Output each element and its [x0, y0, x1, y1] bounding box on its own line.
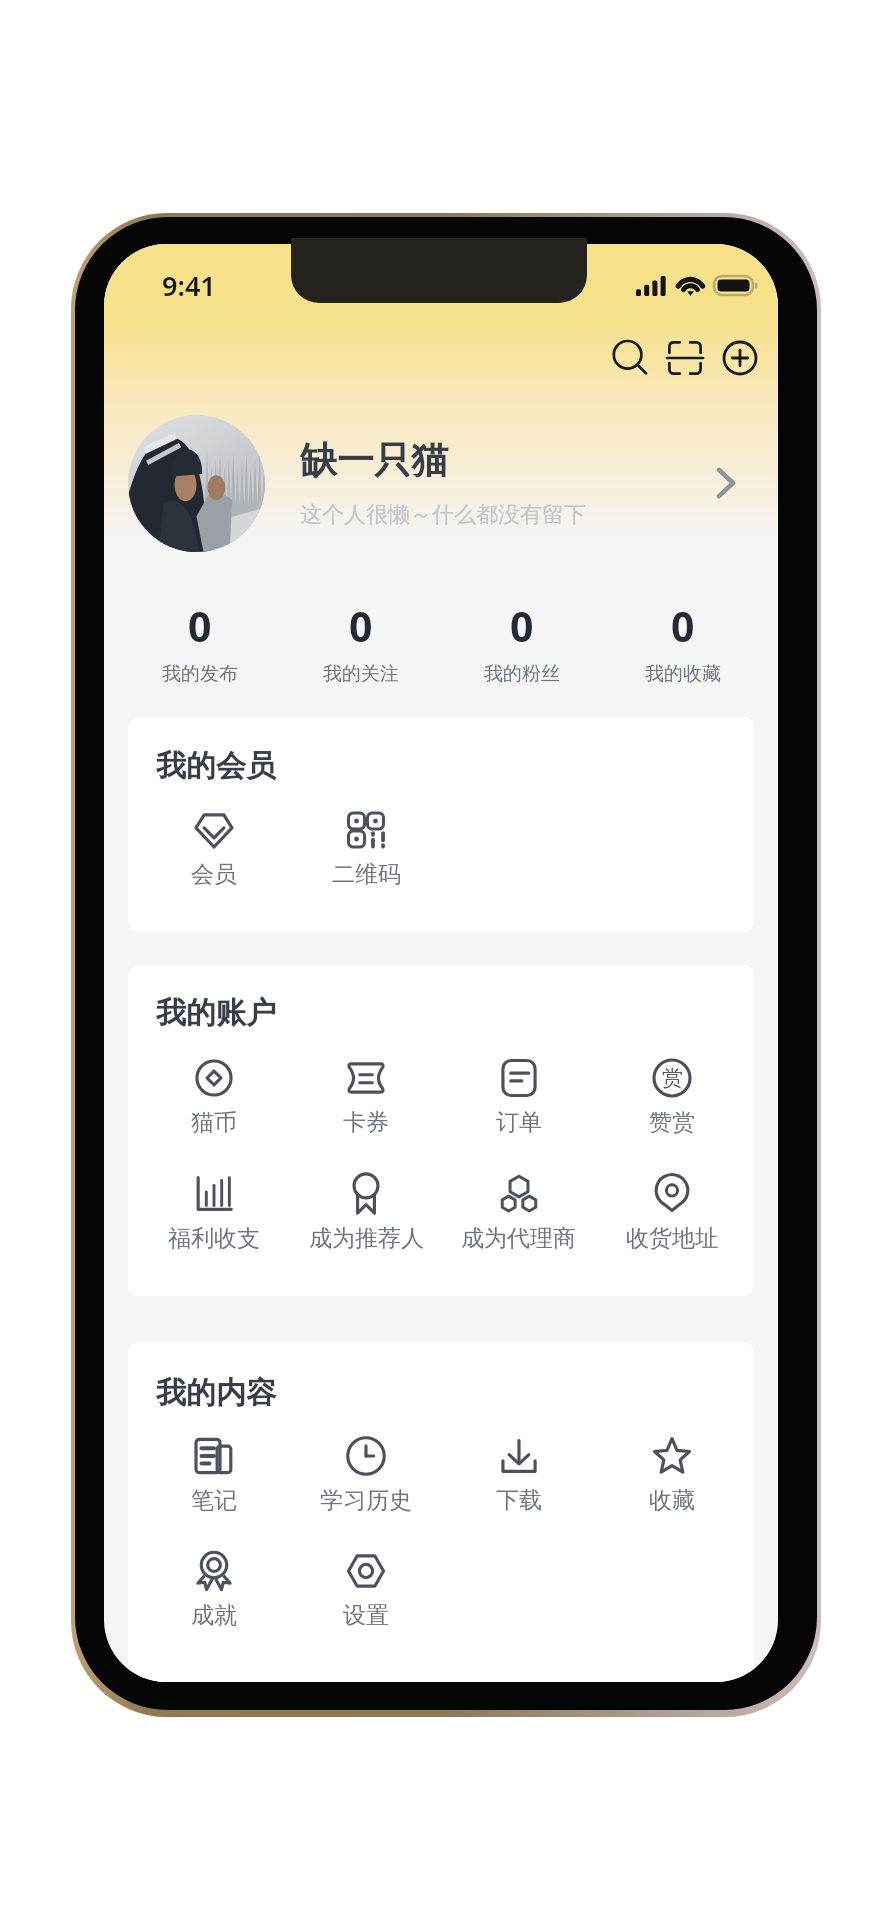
button[interactable]: 0 — [441, 594, 602, 690]
staticText: 我的会员 — [156, 747, 276, 785]
staticText: 学习历史 — [320, 1486, 412, 1515]
staticText: 这个人很懒～什么都没有留下 — [300, 501, 586, 529]
button[interactable]: 成为推荐人 — [290, 1164, 442, 1280]
button[interactable]: 会员 — [138, 800, 290, 916]
button[interactable]: 笔记 — [138, 1426, 290, 1541]
staticText: 成就 — [191, 1601, 237, 1630]
button[interactable]: 设置 — [290, 1541, 442, 1656]
staticText: 我的账户 — [156, 994, 276, 1032]
staticText: 我的关注 — [323, 662, 399, 686]
staticText: 缺一只猫 — [300, 437, 448, 484]
staticText: 0 — [349, 598, 373, 654]
staticText: 赞赏 — [649, 1108, 695, 1137]
staticText: 成为推荐人 — [309, 1224, 424, 1253]
button[interactable]: 赏 — [595, 1048, 748, 1164]
staticText: 猫币 — [191, 1108, 237, 1137]
staticText: 福利收支 — [168, 1224, 260, 1253]
staticText: 0 — [188, 598, 212, 654]
button[interactable]: 收货地址 — [595, 1164, 748, 1280]
staticText: 赏 — [662, 1065, 683, 1091]
button[interactable]: 猫币 — [138, 1048, 290, 1164]
staticText: 我的发布 — [162, 662, 238, 686]
staticText: 卡券 — [343, 1108, 389, 1137]
staticText: 收货地址 — [626, 1224, 718, 1253]
button[interactable]: 成为代理商 — [442, 1164, 595, 1280]
button[interactable]: 福利收支 — [138, 1164, 290, 1280]
staticText: 订单 — [496, 1108, 542, 1137]
button[interactable]: Search — [602, 330, 657, 385]
staticText: 设置 — [343, 1601, 389, 1630]
staticText: 成为代理商 — [461, 1224, 576, 1253]
staticText: 收藏 — [649, 1486, 695, 1515]
button[interactable]: 卡券 — [290, 1048, 442, 1164]
staticText: 0 — [671, 598, 695, 654]
button[interactable]: Add — [712, 330, 767, 385]
staticText: 下载 — [496, 1486, 542, 1515]
button[interactable]: 收藏 — [595, 1426, 748, 1541]
staticText: 我的粉丝 — [484, 662, 560, 686]
button[interactable]: 学习历史 — [290, 1426, 442, 1541]
button[interactable]: 订单 — [442, 1048, 595, 1164]
staticText: 会员 — [191, 860, 237, 889]
button[interactable]: Scan — [657, 330, 712, 385]
staticText: 我的收藏 — [645, 662, 721, 686]
button[interactable]: 缺一只猫 — [104, 409, 778, 557]
staticText: 二维码 — [332, 860, 401, 889]
button[interactable]: 二维码 — [290, 800, 442, 916]
button[interactable]: 下载 — [442, 1426, 595, 1541]
staticText: 我的内容 — [156, 1374, 276, 1412]
staticText: 0 — [510, 598, 534, 654]
button[interactable]: 0 — [602, 594, 763, 690]
staticText: 笔记 — [191, 1486, 237, 1515]
button[interactable]: 0 — [280, 594, 441, 690]
staticText: 9:41 — [162, 267, 216, 304]
button[interactable]: 0 — [120, 594, 280, 690]
button[interactable]: 成就 — [138, 1541, 290, 1656]
